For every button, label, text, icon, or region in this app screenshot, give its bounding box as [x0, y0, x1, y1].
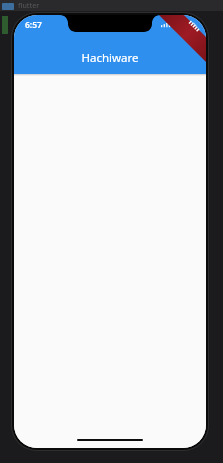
other: Debug banner [158, 15, 206, 63]
staticText: 6:57 [25, 19, 42, 31]
staticText: flutter [18, 1, 40, 11]
staticText: Hachiware [81, 50, 139, 66]
